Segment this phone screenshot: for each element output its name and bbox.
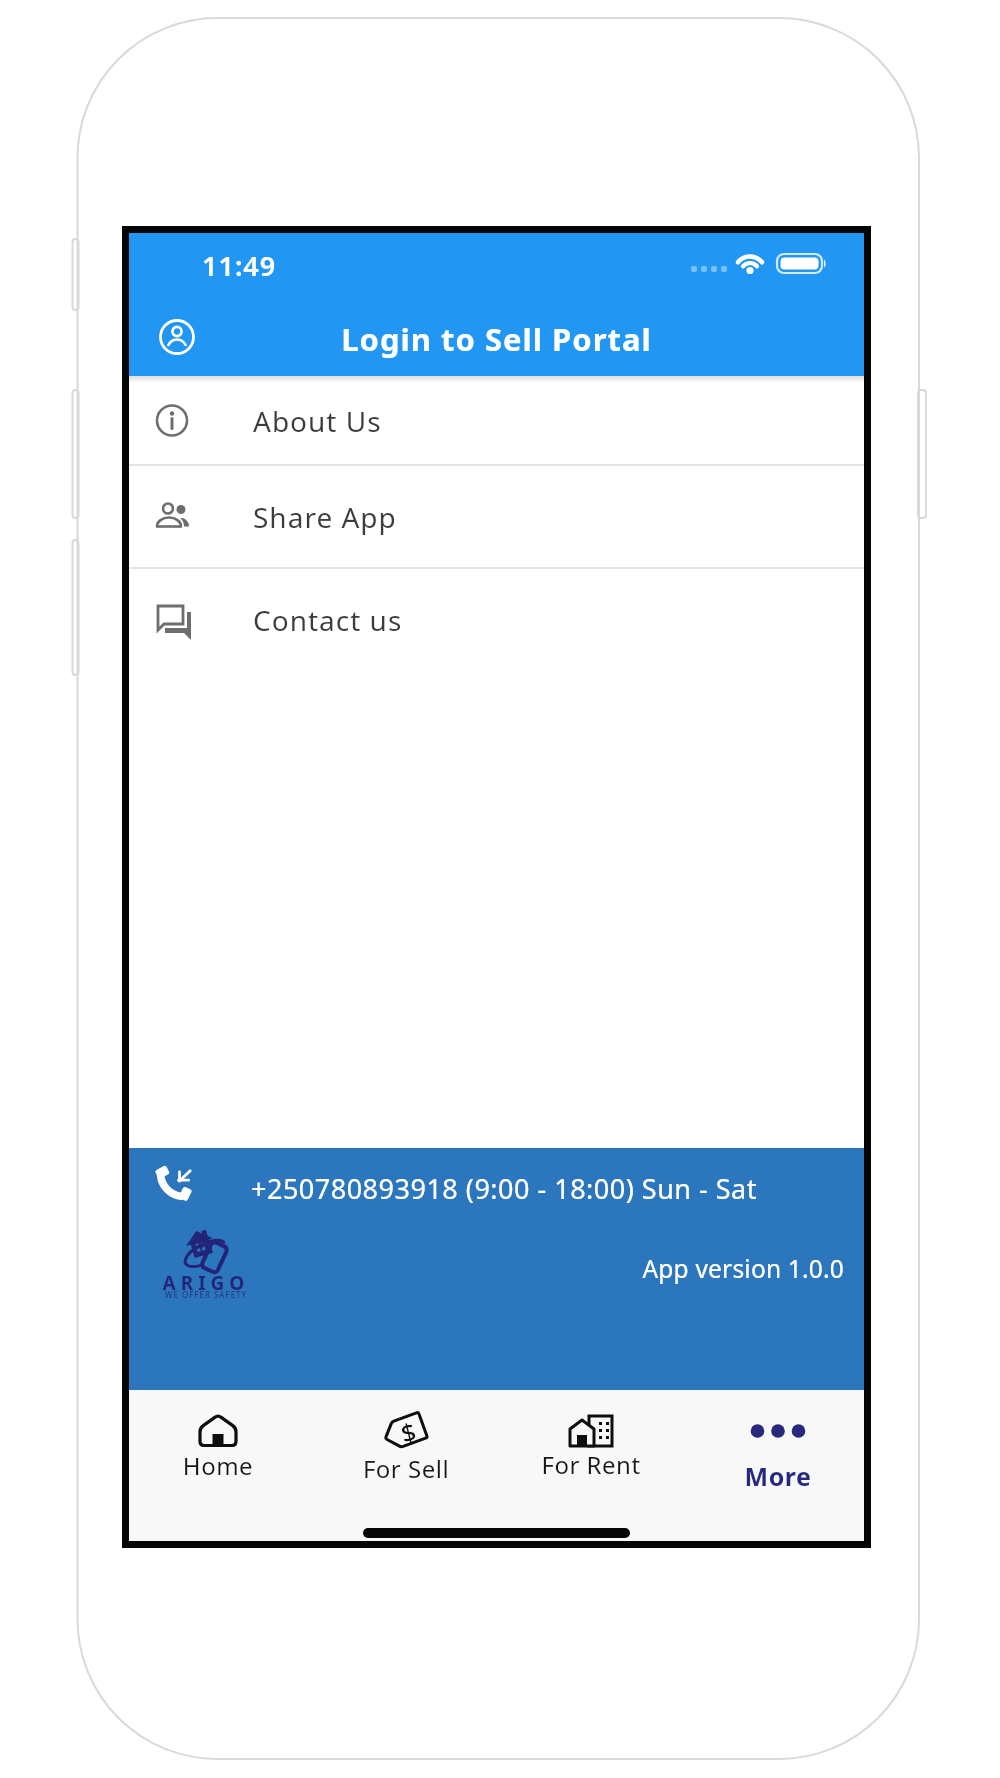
button[interactable] bbox=[149, 309, 205, 365]
button[interactable]: More bbox=[708, 1390, 848, 1500]
staticText: App version 1.0.0 bbox=[129, 1252, 844, 1285]
button[interactable]: About Us bbox=[129, 377, 864, 464]
staticText: Contact us bbox=[253, 601, 403, 639]
staticText: For Rent bbox=[521, 1448, 661, 1481]
staticText: For Sell bbox=[336, 1452, 476, 1485]
staticText: 11:49 bbox=[202, 247, 277, 284]
button[interactable]: Share App bbox=[129, 466, 864, 567]
staticText: About Us bbox=[253, 402, 382, 440]
staticText: $ bbox=[397, 1414, 420, 1450]
button[interactable]: For Sell bbox=[336, 1390, 476, 1500]
staticText: More bbox=[708, 1459, 848, 1493]
staticText: Login to Sell Portal bbox=[129, 318, 864, 360]
button[interactable]: For Rent bbox=[521, 1390, 661, 1500]
button[interactable]: Home bbox=[148, 1390, 288, 1500]
staticText: +250780893918 (9:00 - 18:00) Sun - Sat bbox=[251, 1170, 757, 1207]
staticText: Share App bbox=[253, 498, 397, 536]
staticText: WE OFFER SAFETY bbox=[156, 1289, 256, 1300]
staticText: Home bbox=[148, 1449, 288, 1482]
button[interactable]: Contact us bbox=[129, 569, 864, 671]
staticText: ARIGO bbox=[156, 1270, 256, 1296]
